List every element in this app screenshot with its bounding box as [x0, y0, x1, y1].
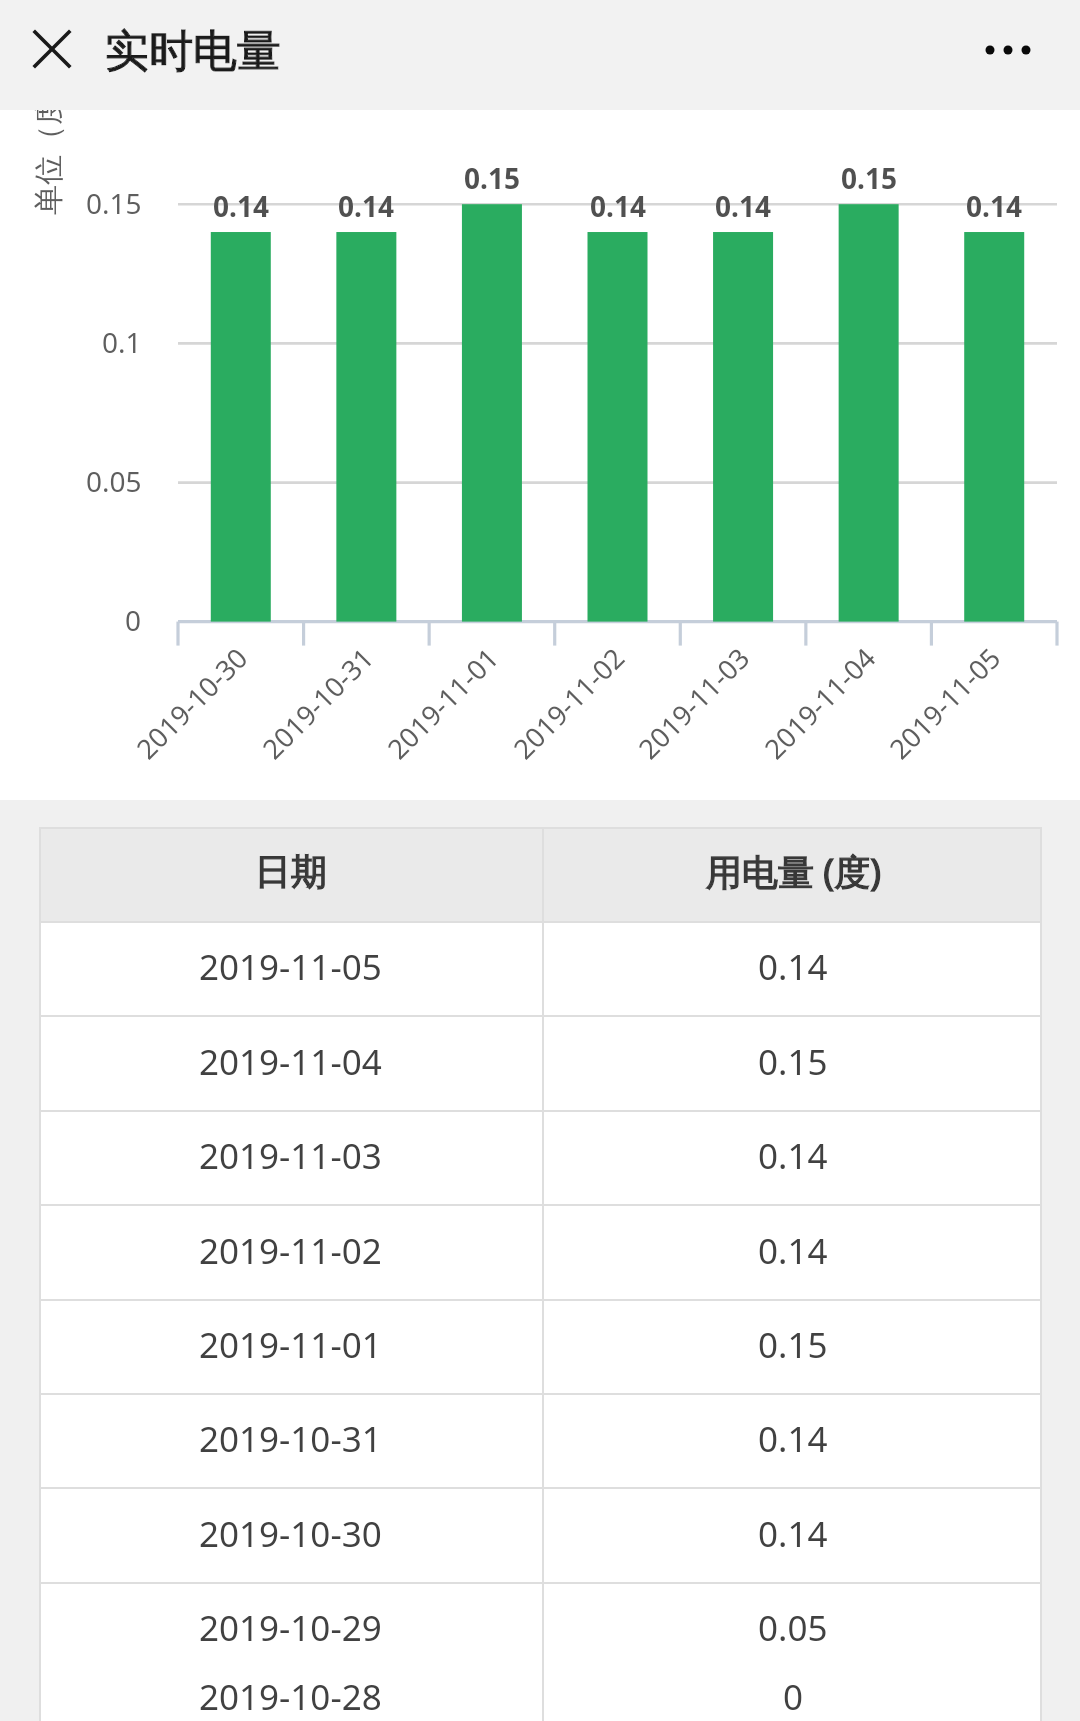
button[interactable]: 2019-11-04	[39, 1017, 1042, 1112]
staticText: 2019-11-03	[199, 1132, 382, 1180]
button[interactable]: 2019-11-01	[39, 1301, 1042, 1395]
staticText: 2019-10-31	[254, 639, 381, 767]
button[interactable]: More options	[970, 12, 1046, 88]
staticText: 0.14	[758, 1415, 828, 1463]
button[interactable]: 2019-11-05	[39, 923, 1042, 1017]
staticText: 2019-11-04	[199, 1038, 382, 1086]
staticText: 2019-11-02	[199, 1227, 382, 1275]
button[interactable]: 2019-11-03	[39, 1112, 1042, 1206]
staticText: 2019-10-31	[199, 1415, 382, 1463]
button[interactable]: Close	[14, 11, 90, 87]
staticText: 0.14	[966, 187, 1022, 225]
staticText: 0.15	[464, 159, 520, 197]
button[interactable]: 2019-10-28	[39, 1652, 1042, 1721]
staticText: 2019-10-28	[199, 1673, 382, 1721]
staticText: 0.14	[338, 187, 394, 225]
staticText: 2019-10-30	[128, 639, 255, 767]
staticText: 实时电量	[105, 24, 281, 79]
staticText: 0.14	[590, 187, 646, 225]
staticText: 2019-11-02	[505, 639, 632, 767]
staticText: 2019-11-05	[199, 943, 382, 991]
staticText: 0.15	[758, 1321, 828, 1369]
staticText: 2019-11-05	[881, 639, 1008, 767]
staticText: 0.1	[102, 323, 142, 361]
button[interactable]: 2019-10-31	[39, 1395, 1042, 1489]
staticText: 0.05	[758, 1604, 828, 1652]
staticText: 0.15	[758, 1038, 828, 1086]
staticText: 用电量 (度)	[706, 847, 881, 896]
staticText: 0	[783, 1673, 804, 1721]
staticText: 0.14	[213, 187, 269, 225]
button[interactable]: 2019-11-02	[39, 1206, 1042, 1301]
staticText: 2019-10-29	[199, 1604, 382, 1652]
staticText: 实时电量	[105, 24, 281, 79]
staticText: 单位（度）	[30, 110, 68, 215]
button[interactable]: 2019-10-29	[39, 1584, 1042, 1678]
staticText: 2019-10-30	[199, 1510, 382, 1558]
staticText: 2019-11-01	[379, 639, 506, 767]
staticText: 0.14	[758, 1227, 828, 1275]
staticText: 用电量 (度)	[706, 847, 881, 896]
staticText: 0.15	[86, 184, 142, 222]
staticText: 0.14	[715, 187, 771, 225]
staticText: 日期	[255, 849, 327, 894]
staticText: 2019-11-01	[199, 1321, 382, 1369]
staticText: 日期	[255, 849, 327, 894]
staticText: 2019-11-04	[756, 639, 883, 767]
staticText: 2019-11-03	[630, 639, 757, 767]
staticText: 0.14	[758, 1132, 828, 1180]
button[interactable]: 2019-10-30	[39, 1489, 1042, 1584]
staticText: 0.14	[758, 1510, 828, 1558]
staticText: 0.05	[86, 462, 142, 500]
staticText: 0.14	[758, 943, 828, 991]
staticText: 0.15	[841, 159, 897, 197]
staticText: 0	[125, 601, 142, 639]
